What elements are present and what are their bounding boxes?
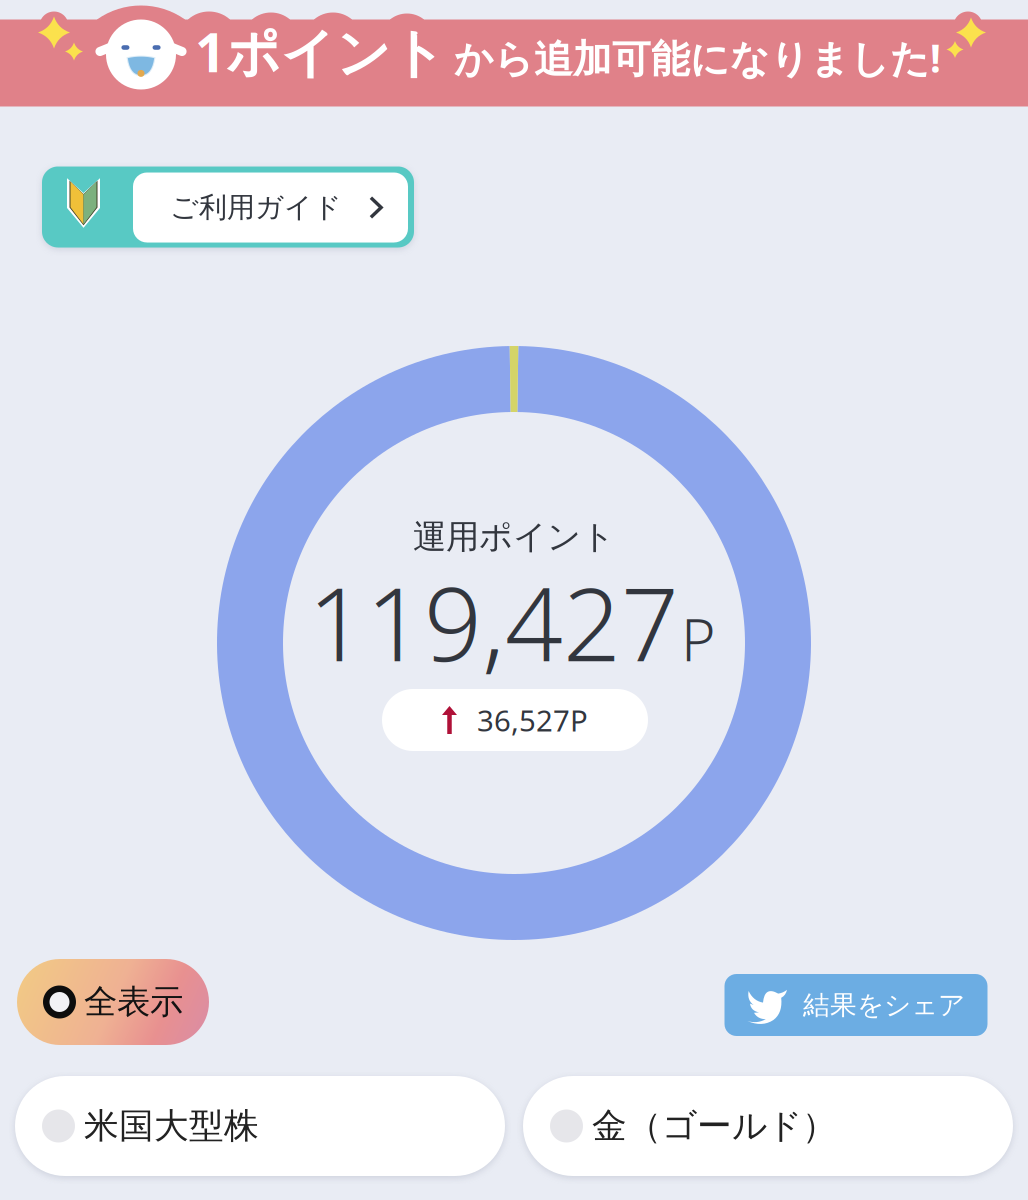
button[interactable]: 全表示	[17, 959, 209, 1045]
staticText: 36,527P	[477, 700, 588, 739]
staticText: ご利用ガイド	[170, 190, 342, 225]
button[interactable]: 金（ゴールド）	[523, 1076, 1013, 1176]
staticText: 運用ポイント	[413, 516, 615, 557]
button[interactable]: ご利用ガイド	[42, 166, 414, 247]
staticText: P	[681, 600, 716, 677]
staticText: 119,427	[308, 555, 679, 689]
staticText: 全表示	[84, 981, 183, 1022]
staticText: 1ポイント	[195, 16, 446, 87]
staticText: 金（ゴールド）	[592, 1105, 837, 1147]
button[interactable]: 米国大型株	[15, 1076, 505, 1176]
staticText: 結果をシェア	[803, 989, 965, 1021]
staticText: 米国大型株	[84, 1105, 259, 1147]
button[interactable]: 結果をシェア	[724, 974, 987, 1036]
staticText: から追加可能になりました!	[454, 32, 941, 83]
